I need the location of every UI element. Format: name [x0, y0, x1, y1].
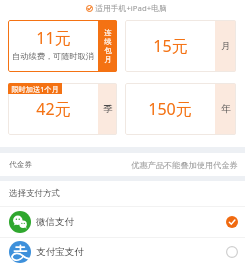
- other: Selected: [226, 216, 238, 228]
- staticText: 11元: [36, 27, 71, 49]
- staticText: 自动续费，可随时取消: [12, 51, 94, 61]
- other: Select: [226, 246, 238, 258]
- staticText: 包: [104, 46, 112, 55]
- button[interactable]: 11元: [8, 20, 117, 72]
- other: Alipay: [9, 241, 31, 263]
- staticText: 优惠产品不能叠加使用代金券: [131, 160, 238, 170]
- staticText: 月: [104, 55, 112, 64]
- staticText: 选择支付方式: [9, 188, 60, 199]
- other: WeChat Pay: [9, 211, 31, 233]
- staticText: 15元: [153, 35, 188, 57]
- staticText: 季: [103, 103, 113, 115]
- staticText: 微信支付: [36, 216, 74, 228]
- staticText: 年: [221, 103, 231, 115]
- staticText: 续: [104, 37, 112, 46]
- staticText: 150元: [148, 98, 192, 120]
- button[interactable]: 150元: [125, 83, 236, 135]
- button[interactable]: Alipay: [0, 238, 245, 266]
- button[interactable]: WeChat Pay: [0, 207, 245, 237]
- staticText: 代金券: [9, 160, 32, 169]
- staticText: 连: [104, 28, 112, 37]
- staticText: 适用手机+iPad+电脑: [95, 3, 167, 14]
- staticText: 限时加送1个月: [11, 84, 59, 94]
- staticText: 支付宝支付: [36, 246, 84, 258]
- staticText: 月: [221, 40, 231, 52]
- button[interactable]: 15元: [125, 20, 236, 72]
- staticText: 42元: [36, 98, 71, 120]
- button[interactable]: 代金券: [0, 153, 245, 176]
- button[interactable]: 42元: [8, 83, 117, 135]
